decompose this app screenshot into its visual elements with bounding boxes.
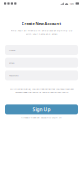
staticText: Already have an account? Sign In: [21, 116, 62, 119]
button[interactable]: Email: [5, 58, 78, 68]
staticText: 100%: [69, 2, 74, 5]
button[interactable]: Name: [5, 45, 78, 55]
staticText: Password: [9, 74, 19, 77]
staticText: Find your all friends in one place by si…: [10, 29, 72, 35]
button[interactable]: Password: [5, 70, 78, 80]
staticText: Create New Account: [21, 21, 61, 26]
staticText: Email: [9, 61, 15, 64]
button[interactable]: Already have an account? Sign In: [21, 115, 62, 119]
staticText: Name: [9, 48, 15, 52]
button[interactable]: Sign Up: [5, 104, 78, 114]
staticText: By clicking sign up, you are indicating …: [10, 87, 73, 94]
staticText: Sign Up: [32, 106, 50, 113]
